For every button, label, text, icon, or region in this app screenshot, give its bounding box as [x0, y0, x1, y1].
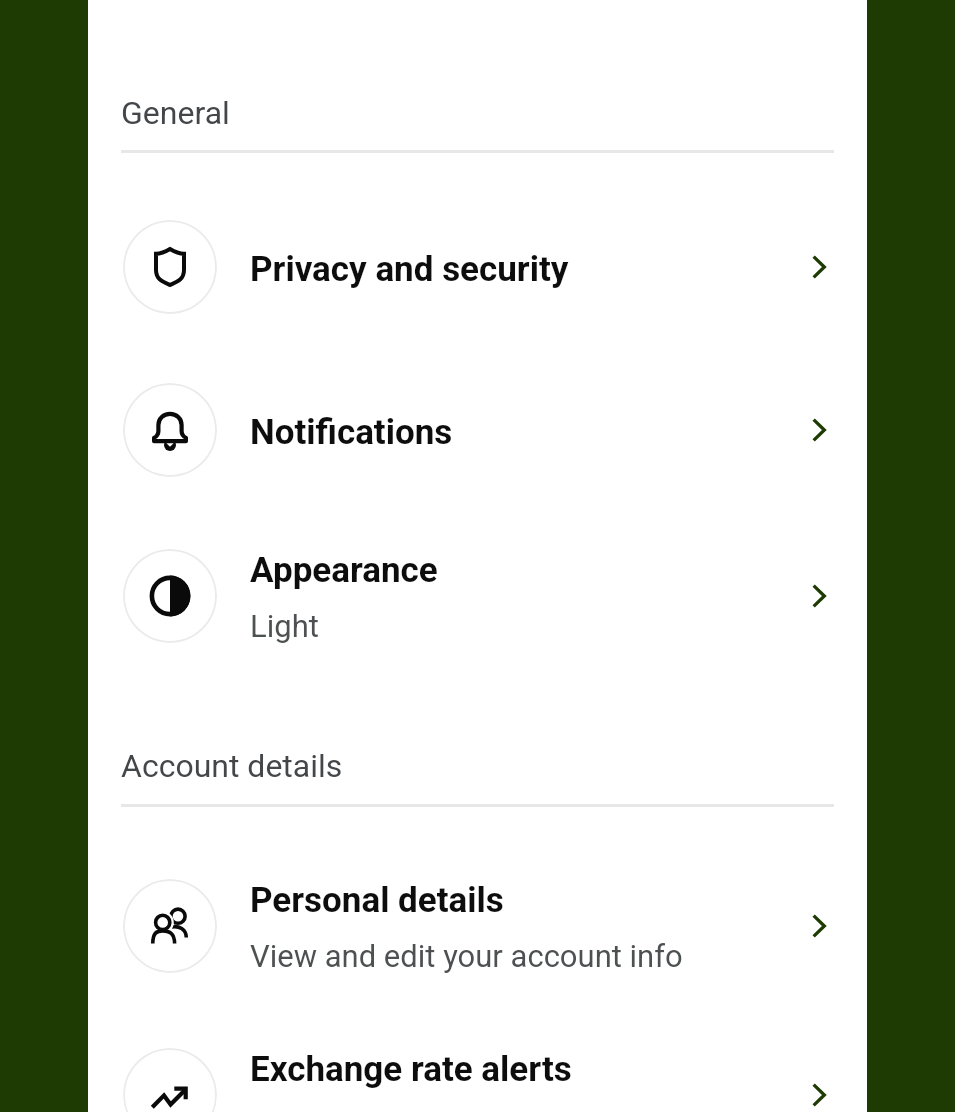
- other: Open Appearance: [812, 584, 826, 608]
- other: Open Privacy and security: [812, 255, 826, 279]
- button[interactable]: Exchange rate alerts: [88, 1035, 867, 1112]
- staticText: Exchange rate alerts: [250, 1049, 572, 1090]
- button[interactable]: Personal details: [88, 866, 867, 986]
- staticText: Appearance: [250, 550, 438, 591]
- other: Open Exchange rate alerts: [812, 1083, 826, 1107]
- staticText: Account details: [121, 747, 343, 785]
- staticText: Notifications: [250, 412, 453, 453]
- other: Open Personal details: [812, 914, 826, 938]
- other: Open Notifications: [812, 418, 826, 442]
- button[interactable]: Appearance: [88, 536, 867, 656]
- button[interactable]: Notifications: [88, 370, 867, 490]
- button[interactable]: Privacy and security: [88, 207, 867, 327]
- staticText: Personal details: [250, 880, 504, 921]
- staticText: View and edit your account info: [250, 938, 683, 974]
- staticText: Privacy and security: [250, 249, 569, 290]
- staticText: General: [121, 94, 230, 132]
- staticText: Light: [250, 608, 319, 644]
